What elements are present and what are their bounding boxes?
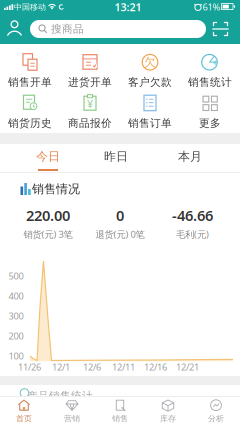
staticText: 欠 <box>144 55 156 69</box>
staticText: 11/26 <box>18 361 41 373</box>
staticText: 销售开单 <box>8 76 52 89</box>
staticText: 销货历史 <box>8 117 52 130</box>
button[interactable]: 库存 <box>144 397 192 426</box>
button[interactable]: 首页 <box>0 397 48 426</box>
button[interactable]: 分析 <box>192 397 240 426</box>
button[interactable]: 今日 <box>18 142 78 171</box>
staticText: 销售订单 <box>128 117 172 130</box>
button[interactable]: 销售 <box>96 397 144 426</box>
staticText: 产品销售统计 <box>27 389 93 402</box>
staticText: 220.00 <box>26 206 70 225</box>
staticText: 客户欠款 <box>128 76 172 89</box>
staticText: 12/16 <box>144 361 167 373</box>
staticText: 退货(元) 0笔 <box>95 228 144 240</box>
button[interactable]: 销售开单 <box>0 53 60 89</box>
staticText: 本月 <box>178 149 202 164</box>
staticText: 营销 <box>64 414 80 423</box>
staticText: 12/11 <box>112 361 135 373</box>
staticText: 进货开单 <box>68 76 112 89</box>
staticText: 300 <box>8 310 23 322</box>
staticText: 13:21 <box>114 0 141 14</box>
staticText: 搜商品 <box>51 22 84 35</box>
button[interactable]: 更多 <box>180 94 240 130</box>
staticText: 更多 <box>199 117 221 130</box>
staticText: 今日 <box>36 149 60 164</box>
staticText: 400 <box>8 290 23 302</box>
staticText: 中国移动 <box>14 2 46 12</box>
staticText: 销售情况 <box>32 182 80 196</box>
staticText: 61% <box>202 1 220 13</box>
staticText: 销售 <box>112 414 128 423</box>
staticText: 昨日 <box>104 149 128 164</box>
staticText: 分析 <box>208 414 224 423</box>
button[interactable]: 欠 <box>120 53 180 89</box>
button[interactable]: ¥ <box>60 94 120 130</box>
button[interactable]: 销货历史 <box>0 94 60 130</box>
button[interactable]: 进货开单 <box>60 53 120 89</box>
staticText: 库存 <box>160 414 176 423</box>
button[interactable]: 营销 <box>48 397 96 426</box>
button[interactable]: 昨日 <box>86 142 146 171</box>
staticText: 12/1 <box>52 361 70 373</box>
staticText: 12/6 <box>83 361 101 373</box>
button[interactable]: 销售订单 <box>120 94 180 130</box>
staticText: 毛利(元) <box>176 228 209 240</box>
staticText: 500 <box>8 270 23 282</box>
staticText: 首页 <box>16 414 32 423</box>
staticText: -46.66 <box>172 206 213 225</box>
staticText: 12/21 <box>176 361 199 373</box>
staticText: 100 <box>8 350 23 362</box>
staticText: 0 <box>116 206 124 225</box>
staticText: 200 <box>8 330 23 342</box>
staticText: 销货(元) 3笔 <box>23 228 72 240</box>
button[interactable]: 本月 <box>160 142 220 171</box>
button[interactable]: 搜商品 <box>30 20 206 38</box>
button[interactable]: 账户 <box>6 19 23 38</box>
button[interactable]: 销售统计 <box>180 53 240 89</box>
staticText: ¥ <box>87 97 93 111</box>
button[interactable]: 扫一扫 <box>213 22 229 36</box>
staticText: 销售统计 <box>188 76 232 89</box>
staticText: 商品报价 <box>68 117 112 130</box>
